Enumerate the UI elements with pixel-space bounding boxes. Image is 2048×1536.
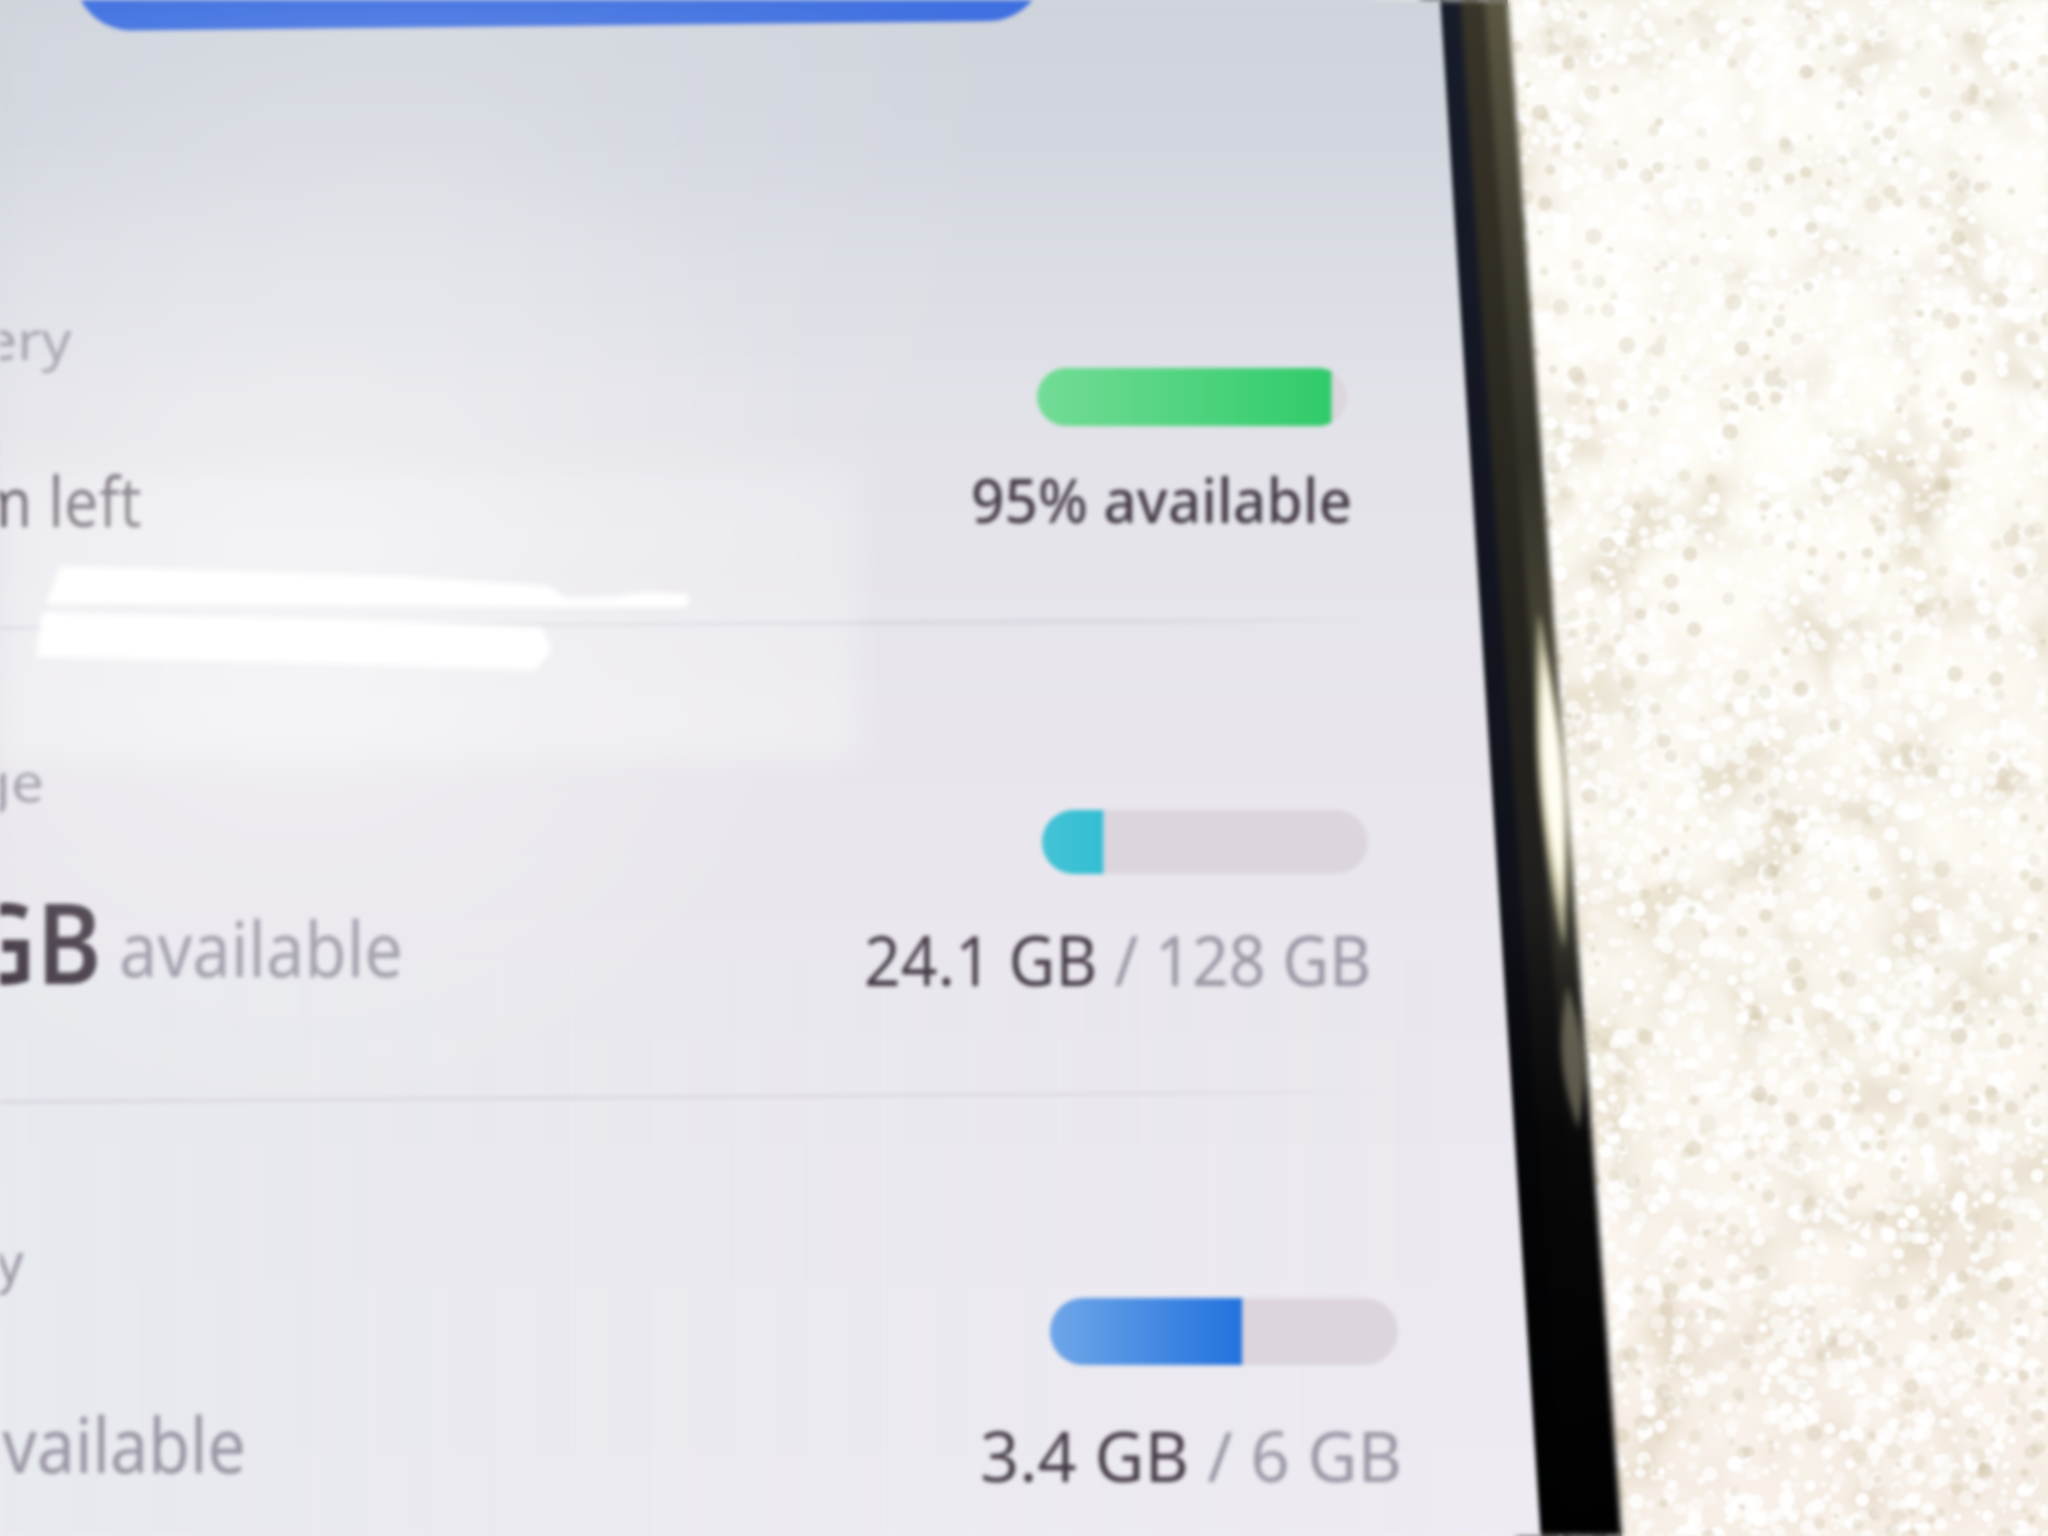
button[interactable]: Storage, 24.1 GB of 128 GB used [0,640,1392,1090]
button[interactable]: Battery, 95% available [0,240,1380,620]
button[interactable]: Memory, 3.4 GB of 6 GB used [0,1115,1400,1535]
button[interactable]: Optimise now [76,0,1034,22]
